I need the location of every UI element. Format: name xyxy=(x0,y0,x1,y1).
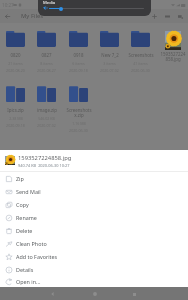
staticText: New 7_2 xyxy=(101,52,119,58)
button[interactable]: Screenshots x.zip xyxy=(63,86,94,133)
button[interactable]: Recent apps xyxy=(128,287,141,300)
button[interactable]: Copy xyxy=(0,198,188,211)
staticText: 2.38 MB xyxy=(9,116,23,121)
staticText: Open in... xyxy=(16,278,41,285)
button[interactable]: Open in... xyxy=(0,276,188,287)
button[interactable]: 1593527224 858.jpg xyxy=(157,31,188,62)
staticText: 3 items xyxy=(103,61,116,66)
button[interactable]: More options xyxy=(174,9,187,23)
staticText: 2020-07-02 xyxy=(100,68,119,73)
staticText: 546.02 KB xyxy=(38,116,55,121)
button[interactable]: New 7_2 xyxy=(94,31,125,73)
staticText: Clean Photo xyxy=(16,240,47,247)
staticText: 0820 xyxy=(10,52,21,58)
button[interactable]: image.zip xyxy=(31,86,62,128)
button[interactable]: Home xyxy=(88,287,101,300)
button[interactable]: 1593527224858.jpg xyxy=(0,150,188,171)
button[interactable]: Screenshots xyxy=(125,31,156,73)
staticText: 2020-09-18 xyxy=(69,68,88,73)
staticText: Screenshots xyxy=(128,52,154,58)
staticText: 1.16 MB xyxy=(72,121,86,126)
staticText: Zip xyxy=(16,175,24,182)
staticText: 2020-06-30 xyxy=(131,68,150,73)
staticText: Send Mail xyxy=(16,188,41,195)
button[interactable]: 0827 xyxy=(31,31,62,73)
staticText: 2020-09-18 xyxy=(6,123,25,128)
staticText: Add to Favorites xyxy=(16,253,58,260)
staticText: 1593527224 858.jpg xyxy=(160,51,186,62)
staticText: My Files xyxy=(21,12,44,20)
button[interactable]: Rename xyxy=(0,211,188,224)
staticText: 8 items xyxy=(40,61,53,66)
staticText: 0918 xyxy=(73,52,84,58)
staticText: Rename xyxy=(16,214,37,221)
button[interactable]: Add xyxy=(148,9,161,23)
staticText: Delete xyxy=(16,227,33,234)
button[interactable]: Back xyxy=(46,287,59,300)
staticText: Screenshots x.zip xyxy=(66,107,92,118)
button[interactable]: Delete xyxy=(0,224,188,237)
button[interactable]: Zip xyxy=(0,172,188,185)
staticText: Ipics.zip xyxy=(7,107,24,113)
staticText: Media xyxy=(43,0,56,6)
staticText: 2020-07-02 xyxy=(37,123,56,128)
staticText: 940.74 KB 2020-06-30 10:27 xyxy=(18,163,70,168)
staticText: 2020-08-20 xyxy=(6,68,25,73)
staticText: 6 items xyxy=(72,61,85,66)
button[interactable]: Add to Favorites xyxy=(0,250,188,263)
button[interactable]: View as list xyxy=(161,9,174,23)
button[interactable]: Send Mail xyxy=(0,185,188,198)
button[interactable]: Clean Photo xyxy=(0,237,188,250)
staticText: 2020-06-30 xyxy=(69,128,88,133)
staticText: Copy xyxy=(16,201,29,208)
staticText: Details xyxy=(16,266,34,273)
button[interactable]: 0820 xyxy=(0,31,31,73)
button[interactable]: Media xyxy=(38,0,151,16)
staticText: 1593527224858.jpg xyxy=(18,154,72,162)
button[interactable]: Details xyxy=(0,263,188,276)
button[interactable]: Back xyxy=(0,9,14,23)
staticText: 2020-08-27 xyxy=(37,68,56,73)
staticText: 10:27 xyxy=(2,2,14,8)
button[interactable]: Ipics.zip xyxy=(0,86,31,128)
staticText: 0827 xyxy=(41,52,52,58)
button[interactable]: 0918 xyxy=(63,31,94,73)
staticText: 21 items xyxy=(8,61,23,66)
staticText: 41 items xyxy=(133,61,148,66)
staticText: image.zip xyxy=(37,107,57,113)
